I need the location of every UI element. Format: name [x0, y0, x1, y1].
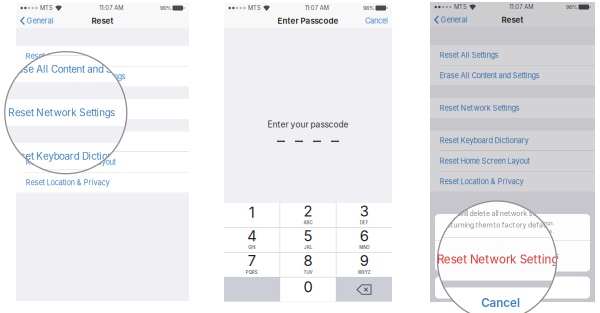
staticText: Reset Network Settings	[453, 254, 545, 265]
button[interactable]: Reset Home Screen Layout	[16, 152, 189, 172]
staticText: MTS	[454, 3, 467, 10]
staticText: Erase All Content and Settings	[23, 76, 123, 85]
staticText: TUV	[303, 270, 312, 275]
button[interactable]: 6	[336, 228, 392, 252]
button[interactable]: Reset Keyboard Dictionary	[16, 131, 189, 151]
staticText: Cancel	[485, 286, 513, 296]
staticText: Reset Location & Privacy	[26, 178, 110, 187]
button[interactable]: Reset Location & Privacy	[417, 175, 582, 195]
staticText: ABC	[303, 220, 312, 225]
button[interactable]: Reset Location & Privacy	[13, 176, 186, 196]
staticText: Reset	[89, 20, 111, 29]
staticText: Reset Keyboard Dictionary	[440, 136, 529, 145]
staticText: Reset	[501, 15, 523, 25]
button[interactable]: General	[434, 13, 470, 26]
staticText: 9	[360, 252, 369, 270]
staticText: Enter your passcode	[267, 119, 348, 130]
button[interactable]: Reset Location & Privacy	[430, 171, 595, 191]
button[interactable]: Erase All Content and Settings	[16, 66, 189, 86]
button[interactable]: Reset Home Screen Layout	[430, 151, 595, 171]
staticText: This will delete all network settings,	[471, 220, 554, 226]
staticText: Reset Keyboard Dictionary	[26, 137, 115, 146]
staticText: 2	[303, 202, 312, 220]
staticText: Reset All Settings	[440, 51, 499, 59]
staticText: Reset Home Screen Layout	[427, 160, 517, 169]
button[interactable]: Reset Keyboard Dictionary	[430, 130, 595, 150]
button[interactable]: Delete	[336, 277, 392, 302]
button[interactable]: Reset Network Settings	[16, 99, 189, 119]
staticText: Enter Passcode	[277, 16, 338, 26]
staticText: Reset Network Settings	[440, 104, 520, 112]
staticText: Reset Keyboard Dictionary	[427, 140, 516, 148]
button[interactable]: 5	[280, 228, 336, 252]
staticText: Reset Home Screen Layout	[26, 158, 116, 166]
button[interactable]: Reset Home Screen Layout	[417, 154, 582, 174]
staticText: 8	[303, 252, 312, 270]
staticText: GHI	[248, 245, 255, 250]
button[interactable]: Reset All Settings	[16, 46, 189, 66]
staticText: returning them to factory defaults.	[471, 228, 553, 234]
button[interactable]: Reset Network Settings	[435, 241, 590, 272]
button[interactable]: Cancel	[422, 280, 577, 302]
button[interactable]: 2	[280, 203, 336, 227]
staticText: Reset Location & Privacy	[440, 177, 524, 186]
staticText: Reset Location & Privacy	[23, 182, 107, 191]
button[interactable]: Erase All Content and Settings	[430, 65, 595, 85]
staticText: Reset Location & Privacy	[427, 181, 511, 189]
button[interactable]: 3	[336, 203, 392, 227]
button[interactable]: Reset Keyboard Dictionary	[417, 134, 582, 154]
staticText: Reset All Settings	[427, 54, 486, 63]
staticText: General	[24, 20, 51, 29]
staticText: 11:07 AM	[305, 4, 329, 11]
button[interactable]: Erase All Content and Settings	[417, 69, 582, 89]
staticText: 6	[360, 227, 369, 245]
button[interactable]: General	[421, 17, 457, 30]
staticText: General	[428, 19, 455, 28]
button[interactable]: Reset Keyboard Dictionary	[13, 135, 186, 155]
staticText: 5	[303, 227, 312, 245]
button[interactable]: Erase All Content and Settings	[13, 70, 186, 90]
button[interactable]: 1	[224, 203, 280, 227]
button[interactable]: 8	[280, 253, 336, 277]
button[interactable]: 7	[224, 253, 280, 277]
staticText: 11:07 AM	[496, 7, 520, 14]
staticText: Reset Network Settings	[23, 108, 103, 117]
button[interactable]: 0	[280, 277, 336, 302]
staticText: 96%	[363, 5, 374, 11]
button[interactable]: Reset All Settings	[13, 50, 186, 70]
staticText: returning them to factory defaults.	[458, 232, 540, 238]
button[interactable]: 4	[224, 228, 280, 252]
staticText: DEF	[360, 220, 369, 225]
staticText: MTS	[40, 4, 53, 11]
button[interactable]: Reset Network Settings	[430, 98, 595, 118]
staticText: Reset Keyboard Dictionary	[23, 141, 112, 150]
staticText: 96%	[160, 5, 171, 11]
staticText: WXYZ	[358, 270, 371, 275]
staticText: 96%	[566, 4, 577, 10]
button[interactable]: Reset Network Settings	[422, 244, 577, 275]
button[interactable]: Reset All Settings	[430, 45, 595, 65]
button[interactable]: Cancel	[435, 277, 590, 299]
button[interactable]: Reset All Settings	[417, 48, 582, 68]
staticText: JKL	[304, 245, 312, 250]
button[interactable]: General	[17, 18, 53, 31]
button[interactable]: Reset Home Screen Layout	[13, 156, 186, 176]
staticText: Reset All Settings	[26, 52, 85, 60]
staticText: Reset Network Settings	[427, 107, 507, 116]
staticText: Reset Network Settings	[466, 251, 558, 261]
staticText: General	[27, 16, 54, 25]
staticText: 1	[249, 204, 255, 221]
button[interactable]: Reset Network Settings	[417, 101, 582, 121]
staticText: 7	[248, 252, 256, 270]
button[interactable]: General	[20, 14, 56, 27]
button[interactable]: Cancel	[363, 14, 388, 27]
button[interactable]: Reset Location & Privacy	[16, 172, 189, 192]
staticText: Reset	[488, 18, 510, 28]
staticText: Erase All Content and Settings	[427, 75, 527, 83]
staticText: Reset	[91, 16, 113, 26]
staticText: PQRS	[246, 270, 258, 275]
staticText: 11:07 AM	[99, 4, 123, 11]
button[interactable]: Reset Network Settings	[13, 103, 186, 123]
button[interactable]: 9	[336, 253, 392, 277]
